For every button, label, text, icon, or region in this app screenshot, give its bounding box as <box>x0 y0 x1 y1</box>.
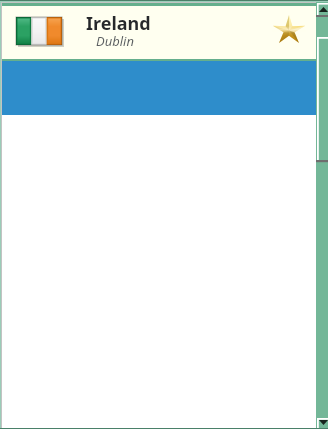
staticText: Ireland <box>86 11 151 36</box>
button[interactable]: Ireland <box>2 6 316 59</box>
staticText: Dublin <box>96 32 134 50</box>
button[interactable]: Scroll down <box>316 417 328 428</box>
button[interactable]: Favourite <box>272 15 306 46</box>
button[interactable]: Scroll up <box>316 3 328 16</box>
